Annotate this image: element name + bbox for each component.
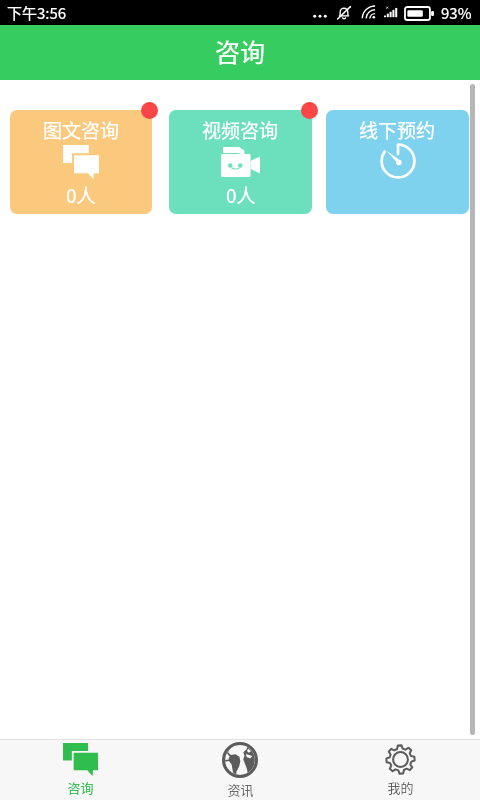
button[interactable]: 图文咨询: [10, 110, 152, 214]
button[interactable]: 咨询: [0, 740, 160, 800]
button[interactable]: 我的: [320, 740, 480, 800]
staticText: 0人: [66, 181, 96, 209]
staticText: 咨询: [215, 33, 266, 69]
staticText: 视频咨询: [202, 116, 279, 144]
staticText: 我的: [387, 778, 414, 797]
button[interactable]: 资讯: [160, 740, 320, 800]
staticText: 咨询: [67, 778, 94, 797]
staticText: 下午3:56: [7, 2, 67, 24]
staticText: 0人: [226, 181, 256, 209]
button[interactable]: 视频咨询: [169, 110, 312, 214]
button[interactable]: 线下预约: [326, 110, 469, 214]
staticText: 线下预约: [359, 116, 436, 144]
staticText: 图文咨询: [43, 116, 120, 144]
staticText: 资讯: [227, 780, 254, 799]
staticText: 93%: [441, 2, 472, 24]
